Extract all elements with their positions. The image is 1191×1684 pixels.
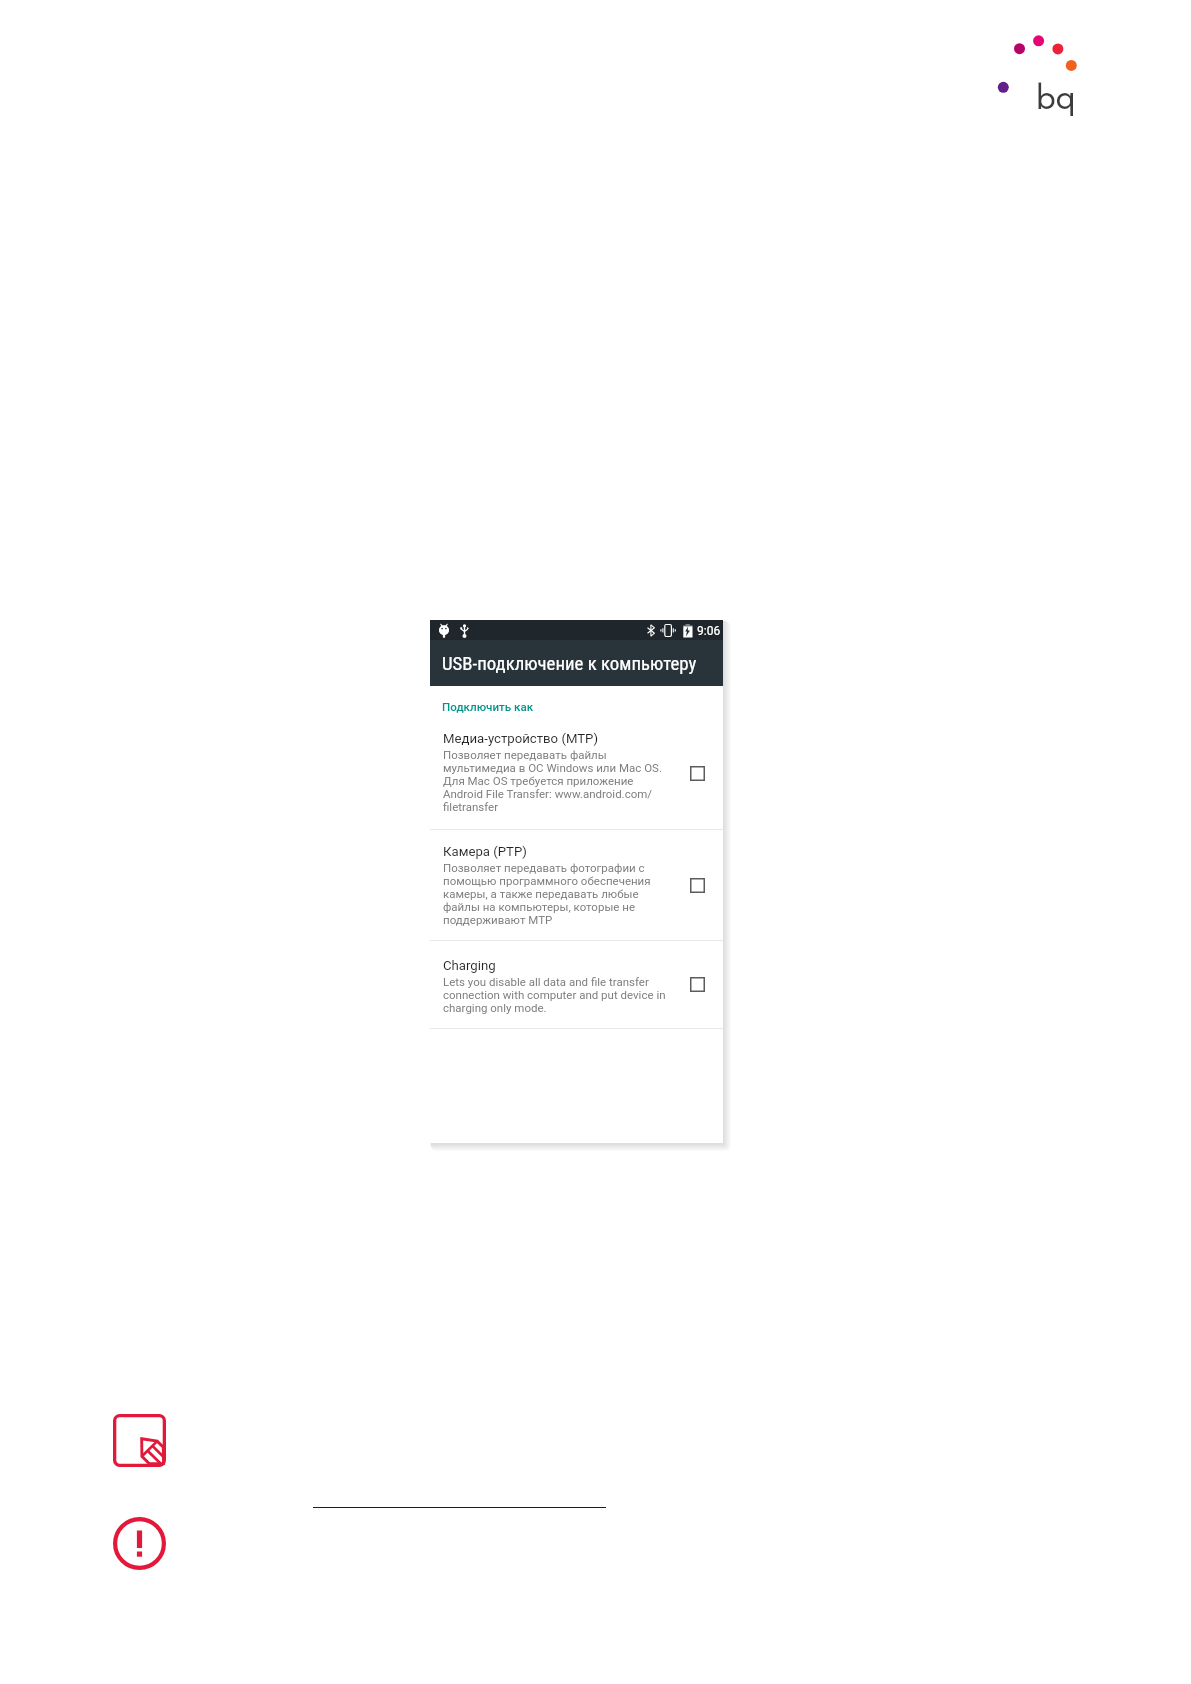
staticText: Медиа-устройство (MTP) — [443, 731, 599, 746]
other: Battery charging — [683, 624, 693, 638]
staticText: Подключить как — [442, 700, 534, 714]
button[interactable]: Select Charging — [690, 977, 705, 992]
staticText: 9:06 — [697, 624, 721, 638]
button[interactable]: bq logo — [990, 20, 1095, 120]
staticText: Позволяет передавать файлы мультимедиа в… — [443, 748, 662, 813]
button[interactable]: Медиа-устройство (MTP) — [430, 718, 723, 829]
button[interactable]: Подключить как — [430, 691, 723, 718]
other: Vibrate mode — [660, 624, 676, 637]
staticText: Lets you disable all data and file trans… — [443, 975, 666, 1014]
staticText: Камера (PTP) — [443, 844, 527, 859]
staticText: USB-подключение к компьютеру — [442, 653, 697, 675]
button[interactable]: Select Камера (PTP) — [690, 878, 705, 893]
button[interactable]: USB-подключение к компьютеру — [430, 640, 723, 686]
button[interactable]: Charging — [430, 941, 723, 1028]
staticText: Позволяет передавать фотографии с помощь… — [443, 861, 651, 926]
other: Android system notification — [439, 624, 449, 638]
other: Bluetooth on — [647, 624, 656, 637]
button[interactable]: Warning — [113, 1517, 166, 1570]
button[interactable]: Select Медиа-устройство (MTP) — [690, 766, 705, 781]
staticText: bq — [1036, 72, 1076, 122]
staticText: Charging — [443, 958, 496, 973]
other: USB connected — [460, 624, 469, 638]
button[interactable]: Камера (PTP) — [430, 830, 723, 940]
button[interactable]: Note — [113, 1414, 166, 1467]
